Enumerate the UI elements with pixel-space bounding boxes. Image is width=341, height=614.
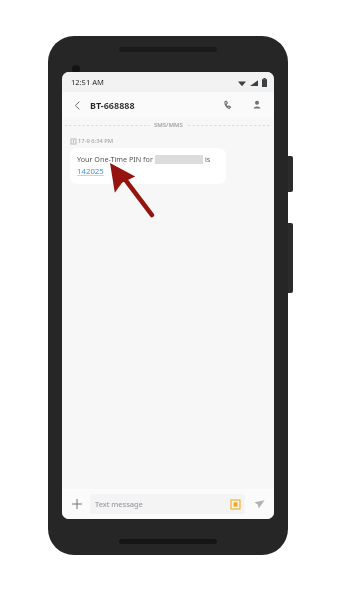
staticText: Text message: [95, 499, 143, 509]
staticText: SMS/MMS: [154, 121, 183, 129]
staticText: BT-668888: [90, 99, 135, 111]
button[interactable]: Send: [250, 495, 268, 513]
button[interactable]: Contact details: [247, 95, 267, 115]
staticText: Your One-Time PIN for: [77, 154, 153, 164]
staticText: 17-9 6:34 PM: [78, 137, 114, 145]
button[interactable]: Back: [69, 97, 85, 113]
staticText: is: [205, 154, 211, 164]
button[interactable]: Select SIM: [231, 500, 240, 509]
button[interactable]: Call: [218, 95, 238, 115]
button[interactable]: Text message: [90, 494, 245, 514]
button[interactable]: Your One-Time PIN for: [70, 148, 226, 184]
button[interactable]: Add attachment: [68, 495, 86, 513]
button[interactable]: 142025: [77, 166, 104, 177]
staticText: 12:51 AM: [71, 77, 104, 87]
